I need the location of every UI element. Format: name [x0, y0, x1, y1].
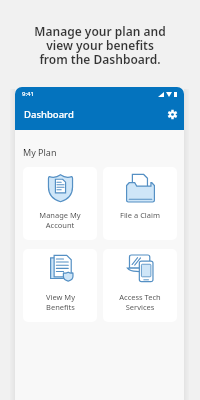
staticText: 9:41 — [22, 90, 34, 98]
staticText: Manage your plan and view your benefits … — [34, 23, 166, 68]
staticText: File a Claim — [120, 210, 160, 220]
staticText: View My Benefits — [46, 292, 75, 312]
button[interactable]: Settings — [164, 107, 181, 124]
button[interactable]: File a Claim — [103, 167, 177, 240]
button[interactable]: Access Tech Services — [103, 249, 177, 322]
staticText: Manage My Account — [39, 210, 81, 230]
staticText: My Plan — [23, 146, 57, 158]
staticText: Access Tech Services — [119, 292, 161, 312]
button[interactable]: Manage My Account — [23, 167, 97, 240]
staticText: Dashboard — [24, 108, 74, 121]
button[interactable]: View My Benefits — [23, 249, 97, 322]
